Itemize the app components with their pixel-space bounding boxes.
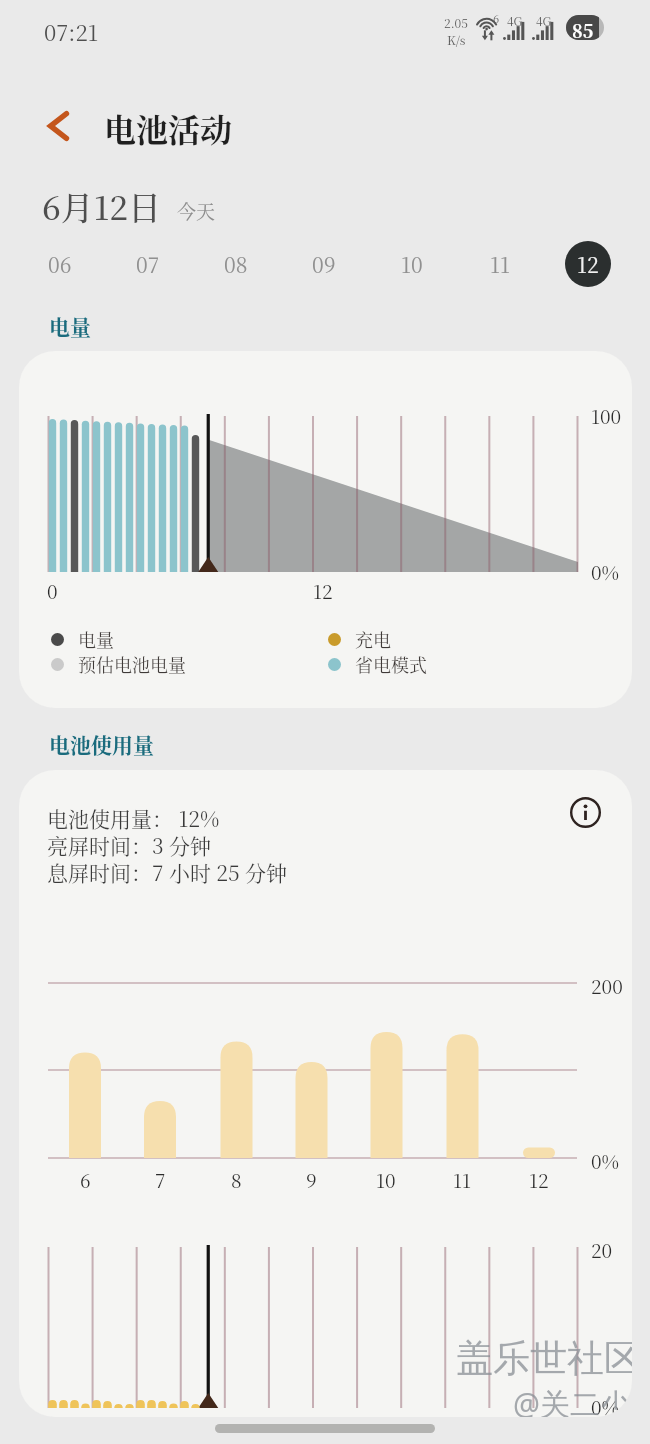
staticText: 今天	[177, 197, 216, 224]
staticText: 8	[231, 1166, 242, 1193]
staticText: 亮屏时间：3 分钟	[47, 830, 212, 860]
button[interactable]: 11	[477, 241, 523, 287]
staticText: 07:21	[44, 16, 99, 48]
staticText: 0%	[591, 558, 620, 585]
staticText: 6	[80, 1166, 91, 1193]
staticText: 06	[48, 249, 72, 279]
staticText: 200	[591, 972, 623, 999]
button[interactable]: 08	[213, 241, 259, 287]
staticText: 预估电池电量	[78, 651, 186, 677]
staticText: 盖乐世社区	[456, 1335, 632, 1382]
staticText: 7	[155, 1166, 166, 1193]
staticText: @关二少	[513, 1383, 630, 1417]
staticText: 85	[572, 17, 594, 40]
staticText: 10	[401, 249, 423, 279]
button[interactable]: Back	[37, 105, 79, 147]
button[interactable]: Info	[565, 792, 605, 832]
staticText: 07	[136, 249, 160, 279]
staticText: 2.05	[444, 14, 469, 31]
staticText: 电池使用量： 12%	[47, 803, 220, 833]
button[interactable]: 12	[565, 241, 611, 287]
button[interactable]: 06	[37, 241, 83, 287]
button[interactable]: 07	[125, 241, 171, 287]
staticText: 4G	[507, 12, 523, 29]
staticText: 09	[312, 249, 336, 279]
staticText: 11	[490, 249, 510, 279]
staticText: 20	[591, 1236, 613, 1263]
staticText: 10	[376, 1166, 396, 1193]
staticText: 6月12日	[42, 182, 162, 229]
staticText: 电量	[49, 311, 91, 341]
staticText: 11	[453, 1166, 471, 1193]
staticText: 12	[313, 577, 333, 604]
staticText: 9	[306, 1166, 317, 1193]
staticText: 08	[224, 249, 248, 279]
staticText: 电池使用量	[49, 729, 154, 759]
staticText: 电池活动	[104, 105, 233, 151]
staticText: 0%	[591, 1393, 620, 1417]
staticText: 省电模式	[355, 651, 427, 677]
staticText: 12	[577, 249, 599, 279]
button[interactable]: 09	[301, 241, 347, 287]
staticText: 0	[47, 577, 58, 604]
staticText: 电量	[78, 626, 114, 652]
staticText: 充电	[355, 626, 391, 652]
staticText: 100	[591, 402, 622, 429]
staticText: K/s	[447, 31, 466, 48]
staticText: 0%	[591, 1147, 620, 1174]
staticText: 12	[529, 1166, 549, 1193]
staticText: 4G	[536, 12, 552, 29]
staticText: 6	[493, 10, 500, 26]
staticText: 息屏时间：7 小时 25 分钟	[47, 857, 288, 887]
button[interactable]: 10	[389, 241, 435, 287]
